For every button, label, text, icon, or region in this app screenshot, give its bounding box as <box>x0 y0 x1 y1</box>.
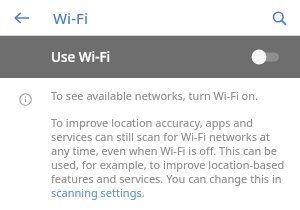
button[interactable]: Use Wi-Fi <box>0 36 300 78</box>
button[interactable]: Search <box>266 5 292 31</box>
staticText: To see available networks, turn Wi-Fi on… <box>51 88 258 103</box>
button[interactable]: Back <box>9 5 35 31</box>
staticText: Wi-Fi <box>53 8 88 28</box>
staticText: To improve location accuracy, apps and s… <box>51 115 288 200</box>
button[interactable]: Use Wi-Fi toggle <box>251 46 283 68</box>
staticText: Use Wi-Fi <box>51 48 111 66</box>
